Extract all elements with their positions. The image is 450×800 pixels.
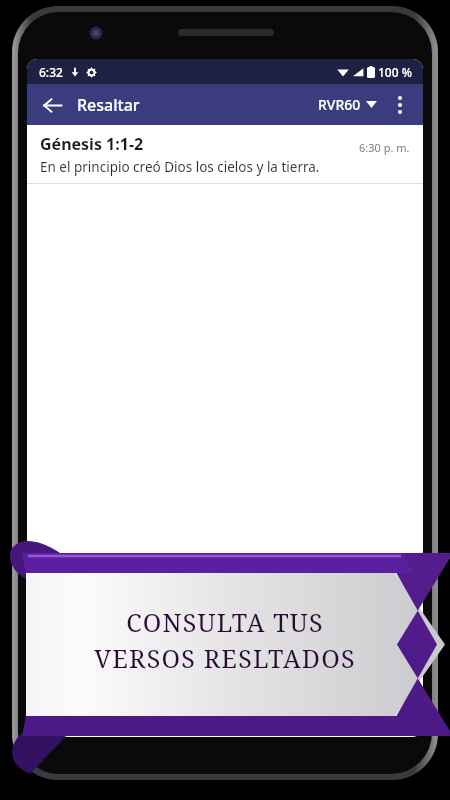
staticText: En el principio creó Dios los cielos y l… — [40, 158, 320, 176]
staticText: 6:30 p. m. — [359, 140, 410, 155]
staticText: Génesis 1:1-2 — [40, 133, 144, 155]
staticText: RVR60 — [318, 95, 361, 114]
staticText: CONSULTA TUS — [126, 605, 324, 639]
staticText: 6:32 — [39, 64, 63, 80]
button[interactable]: RVR60 — [314, 91, 381, 118]
button[interactable]: CONSULTA TUS — [60, 605, 390, 675]
button[interactable]: More options — [383, 88, 417, 122]
button[interactable]: Génesis 1:1-2 — [27, 125, 423, 183]
staticText: Resaltar — [77, 94, 140, 116]
button[interactable]: Back — [33, 86, 71, 124]
staticText: VERSOS RESLTADOS — [94, 641, 356, 675]
staticText: 100 % — [378, 64, 412, 80]
